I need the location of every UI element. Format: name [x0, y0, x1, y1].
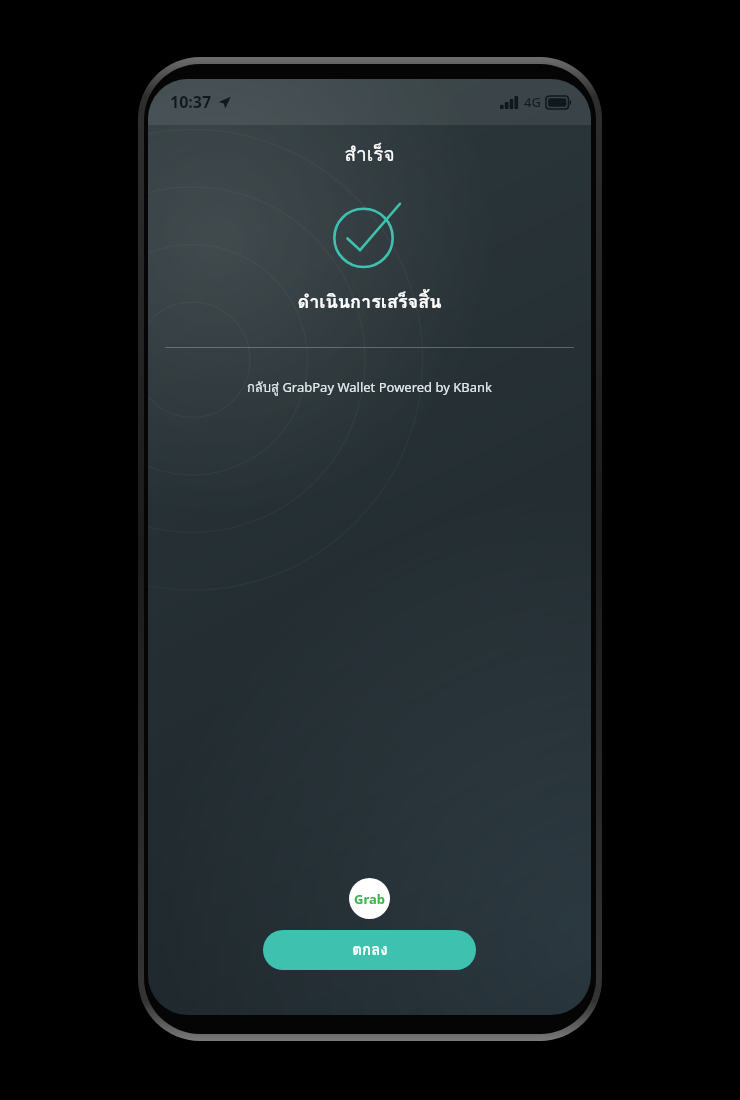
button[interactable]: ตกลง [263, 930, 476, 970]
staticText: 10:37 [170, 91, 212, 113]
staticText: ตกลง [352, 938, 388, 962]
button[interactable]: Grab [349, 878, 390, 919]
button[interactable]: กลับสู่ GrabPay Wallet Powered by KBank [148, 377, 591, 398]
staticText: ดำเนินการเสร็จสิ้น [148, 287, 591, 316]
staticText: Grab [354, 890, 385, 908]
staticText: สำเร็จ [148, 139, 591, 169]
staticText: 4G [524, 93, 541, 111]
